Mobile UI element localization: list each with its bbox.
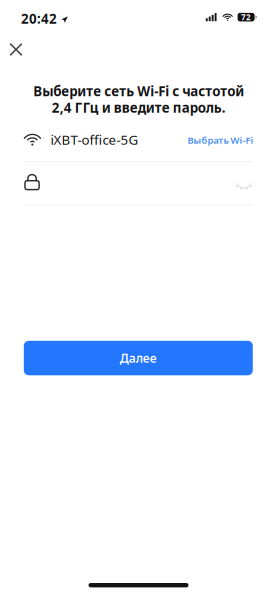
- staticText: 20:42: [21, 10, 57, 27]
- button[interactable]: Show password: [234, 178, 254, 194]
- button[interactable]: Выбрать Wi-Fi: [186, 134, 252, 146]
- button[interactable]: Close: [3, 36, 29, 62]
- staticText: Далее: [120, 350, 157, 366]
- staticText: 72: [241, 12, 251, 22]
- button[interactable]: Далее: [24, 341, 253, 375]
- staticText: iXBT-office-5G: [50, 131, 138, 148]
- staticText: Выберите сеть Wi-Fi с частотой 2,4 ГГц и…: [33, 82, 244, 116]
- staticText: Выбрать Wi-Fi: [187, 134, 253, 146]
